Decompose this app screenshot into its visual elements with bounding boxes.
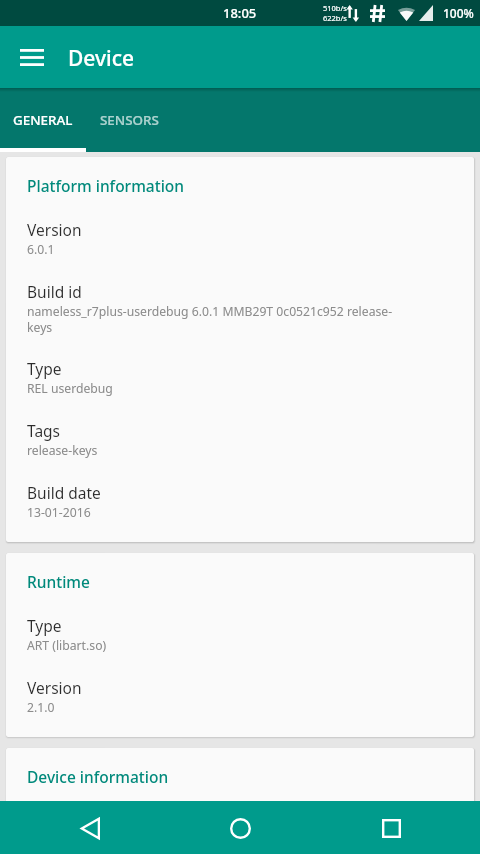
button[interactable]: Open navigation menu — [8, 33, 56, 81]
staticText: 2.1.0 — [27, 699, 413, 716]
staticText: ART (libart.so) — [27, 637, 413, 654]
button[interactable]: Version — [27, 677, 452, 716]
button[interactable]: Recent apps — [367, 804, 415, 852]
button[interactable]: SENSORS — [86, 88, 172, 152]
button[interactable]: Build date — [27, 482, 452, 521]
button[interactable]: GENERAL — [0, 88, 86, 152]
staticText: SENSORS — [100, 111, 159, 129]
button[interactable]: Type — [27, 615, 452, 654]
staticText: 100% — [443, 5, 474, 21]
staticText: Type — [27, 358, 62, 379]
staticText: Runtime — [27, 571, 90, 592]
staticText: 6.0.1 — [27, 241, 413, 258]
button[interactable]: Build id — [27, 281, 452, 335]
staticText: 622b/s — [323, 13, 347, 23]
staticText: GENERAL — [13, 111, 73, 129]
staticText: 18:05 — [223, 4, 257, 22]
staticText: Tags — [27, 420, 61, 441]
staticText: Type — [27, 615, 62, 636]
button[interactable]: Tags — [27, 420, 452, 459]
staticText: Build date — [27, 482, 101, 503]
staticText: release-keys — [27, 442, 413, 459]
button[interactable]: Back — [66, 804, 114, 852]
staticText: 510b/s — [323, 3, 347, 13]
button[interactable]: Home — [216, 804, 264, 852]
staticText: nameless_r7plus-userdebug 6.0.1 MMB29T 0… — [27, 303, 413, 335]
button[interactable]: Type — [27, 358, 452, 397]
staticText: Device information — [27, 766, 169, 787]
staticText: Build id — [27, 281, 82, 302]
staticText: REL userdebug — [27, 380, 413, 397]
staticText: Version — [27, 677, 82, 698]
staticText: Device — [68, 44, 135, 73]
staticText: 13-01-2016 — [27, 504, 413, 521]
staticText: Platform information — [27, 175, 185, 196]
button[interactable]: Version — [27, 219, 452, 258]
staticText: Version — [27, 219, 82, 240]
